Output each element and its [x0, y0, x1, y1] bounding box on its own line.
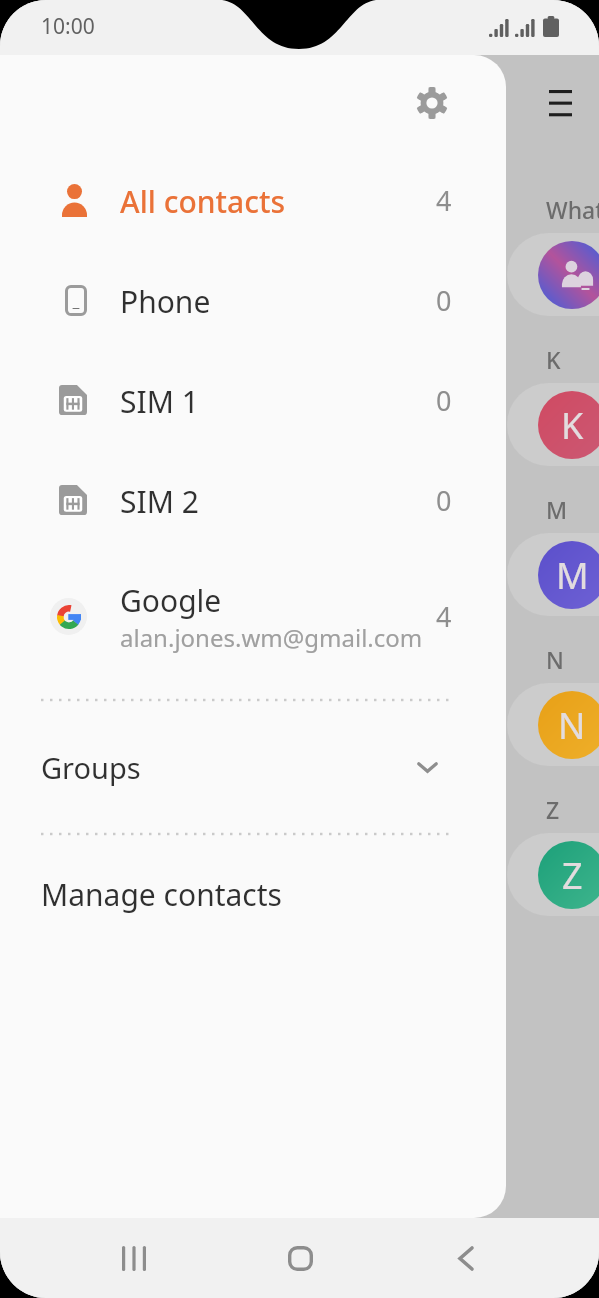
- staticText: 0: [436, 482, 452, 519]
- button[interactable]: Back: [383, 1218, 549, 1298]
- button[interactable]: All contacts: [0, 150, 506, 250]
- staticText: Manage contacts: [41, 874, 282, 915]
- button[interactable]: Google: [0, 558, 506, 674]
- button[interactable]: SIM 1: [0, 350, 506, 450]
- button[interactable]: Phone: [0, 250, 506, 350]
- staticText: Phone: [120, 281, 211, 322]
- staticText: Groups: [41, 748, 141, 787]
- staticText: 4: [436, 182, 452, 219]
- staticText: SIM 1: [120, 381, 199, 422]
- staticText: What: [546, 194, 599, 225]
- button[interactable]: [507, 833, 599, 916]
- staticText: N: [558, 701, 586, 750]
- button[interactable]: Home: [217, 1218, 383, 1298]
- button[interactable]: [507, 233, 599, 316]
- button[interactable]: Open navigation menu: [534, 77, 586, 129]
- button[interactable]: [507, 683, 599, 766]
- button[interactable]: [507, 533, 599, 616]
- staticText: Google: [120, 580, 222, 621]
- staticText: 0: [436, 282, 452, 319]
- staticText: K: [561, 401, 584, 450]
- staticText: All contacts: [120, 181, 285, 222]
- staticText: 10:00: [41, 12, 95, 41]
- staticText: 0: [436, 382, 452, 419]
- button[interactable]: Recent apps: [50, 1218, 217, 1298]
- button[interactable]: Manage contacts: [0, 835, 506, 967]
- button[interactable]: [507, 383, 599, 466]
- button[interactable]: SIM 2: [0, 450, 506, 550]
- staticText: 4: [436, 598, 452, 635]
- staticText: K: [546, 344, 561, 375]
- staticText: alan.jones.wm@gmail.com: [120, 621, 423, 654]
- staticText: M: [556, 551, 589, 600]
- staticText: Z: [546, 794, 560, 825]
- staticText: M: [546, 494, 568, 525]
- staticText: Z: [562, 851, 583, 900]
- staticText: SIM 2: [120, 481, 199, 522]
- button[interactable]: Settings: [404, 75, 460, 131]
- button[interactable]: Groups: [0, 701, 506, 833]
- staticText: N: [546, 644, 564, 675]
